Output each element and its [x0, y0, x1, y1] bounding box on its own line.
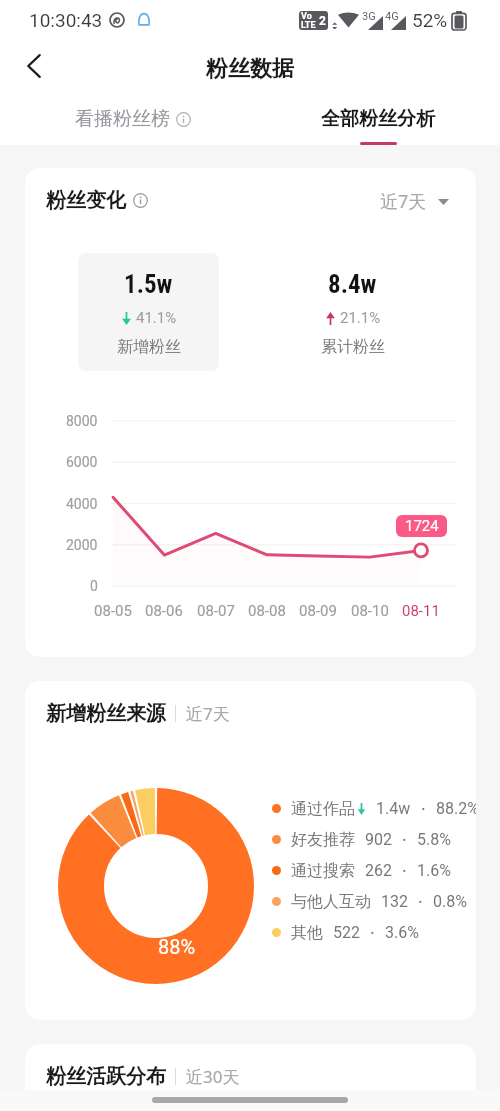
staticText: 3G [362, 10, 376, 23]
staticText: 粉丝数据 [206, 55, 294, 83]
staticText: 08-07 [197, 602, 235, 620]
staticText: · [402, 859, 407, 882]
staticText: 1.4w [376, 799, 411, 818]
staticText: 902 [365, 830, 392, 849]
staticText: 2 [319, 14, 326, 28]
staticText: 3.6% [385, 923, 419, 942]
staticText: 1724 [405, 517, 439, 535]
staticText: 8000 [66, 413, 98, 429]
staticText: 近7天 [380, 189, 427, 214]
staticText: 52% [412, 9, 448, 31]
button[interactable]: 好友推荐 [272, 828, 451, 851]
staticText: LTE [301, 20, 316, 30]
staticText: · [418, 890, 423, 913]
staticText: 8.4w [328, 270, 377, 299]
staticText: 08-10 [351, 602, 389, 620]
button[interactable]: 看播粉丝榜 [0, 93, 250, 145]
staticText: 通过搜索 [291, 861, 355, 881]
button[interactable]: 通过作品 [272, 797, 476, 820]
staticText: 08-08 [248, 602, 286, 620]
staticText: 全部粉丝分析 [321, 107, 435, 131]
staticText: 新增粉丝来源 [46, 701, 166, 726]
staticText: 近30天 [186, 1065, 240, 1088]
staticText: 4000 [66, 496, 98, 512]
staticText: 522 [333, 923, 360, 942]
staticText: 新增粉丝 [117, 337, 181, 357]
staticText: 21.1% [340, 309, 381, 327]
staticText: 通过作品 [291, 799, 355, 819]
staticText: 08-06 [145, 602, 183, 620]
button[interactable]: 全部粉丝分析 [250, 93, 500, 145]
staticText: 08-09 [299, 602, 337, 620]
staticText: 262 [365, 861, 392, 880]
staticText: 4G [385, 10, 399, 23]
staticText: 其他 [291, 923, 323, 943]
staticText: 6000 [66, 454, 98, 470]
staticText: 10:30:43 [29, 9, 103, 31]
staticText: · [421, 797, 426, 820]
staticText: 近7天 [186, 702, 230, 725]
button[interactable]: 其他 [272, 921, 419, 944]
button[interactable]: 近7天 [380, 189, 449, 214]
staticText: 1.6% [417, 861, 451, 880]
staticText: 粉丝变化 [46, 188, 126, 213]
staticText: 88.2% [436, 799, 476, 818]
staticText: · [370, 921, 375, 944]
staticText: 132 [381, 892, 408, 911]
staticText: 41.1% [136, 309, 177, 327]
staticText: 累计粉丝 [321, 337, 385, 357]
staticText: 08-11 [402, 602, 440, 620]
button[interactable]: 通过搜索 [272, 859, 451, 882]
staticText: 好友推荐 [291, 830, 355, 850]
button[interactable]: Back [14, 49, 54, 89]
staticText: 2000 [66, 537, 98, 553]
staticText: 0.8% [433, 892, 467, 911]
staticText: Vo [301, 11, 312, 22]
button[interactable]: 与他人互动 [272, 890, 467, 913]
staticText: 08-05 [94, 602, 132, 620]
staticText: 与他人互动 [291, 892, 371, 912]
staticText: 0 [90, 578, 98, 594]
staticText: · [402, 828, 407, 851]
staticText: 88% [158, 935, 196, 958]
staticText: 粉丝活跃分布 [46, 1064, 166, 1089]
staticText: 看播粉丝榜 [75, 107, 170, 131]
staticText: 5.8% [417, 830, 451, 849]
staticText: 1.5w [124, 270, 173, 299]
